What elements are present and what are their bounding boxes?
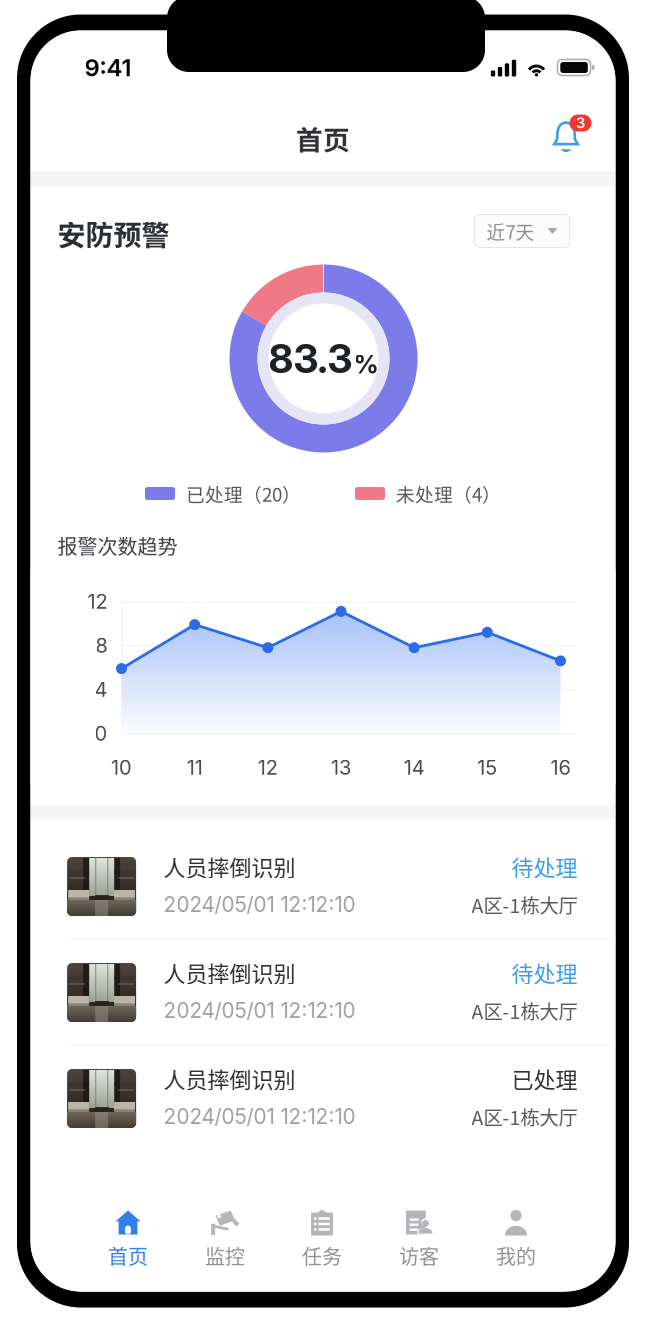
staticText: 待处理	[511, 851, 577, 882]
staticText: 已处理	[511, 1063, 577, 1094]
staticText: 4	[94, 677, 107, 702]
staticText: 3	[576, 114, 585, 132]
staticText: A区-1栋大厅	[471, 890, 577, 918]
button[interactable]: 我的	[467, 1151, 564, 1291]
staticText: 人员摔倒识别	[163, 1063, 295, 1094]
staticText: 12	[87, 589, 107, 614]
staticText: 已处理（20）	[186, 480, 301, 507]
staticText: 监控	[205, 1241, 245, 1270]
staticText: 人员摔倒识别	[163, 851, 295, 882]
staticText: 83.3	[268, 334, 352, 383]
staticText: 11	[187, 755, 203, 780]
staticText: A区-1栋大厅	[471, 996, 577, 1024]
staticText: 8	[95, 633, 107, 658]
staticText: 近7天	[486, 217, 534, 244]
button[interactable]: 人员摔倒识别	[30, 939, 615, 1045]
staticText: 0	[94, 721, 107, 746]
staticText: 2024/05/01 12:12:10	[163, 1104, 355, 1129]
staticText: 2024/05/01 12:12:10	[163, 892, 355, 917]
staticText: 报警次数趋势	[57, 531, 177, 560]
staticText: 13	[331, 755, 351, 780]
staticText: A区-1栋大厅	[471, 1102, 577, 1130]
staticText: 任务	[302, 1241, 342, 1270]
staticText: 未处理（4）	[396, 480, 501, 507]
staticText: 12	[258, 755, 278, 780]
button[interactable]: 人员摔倒识别	[30, 819, 615, 939]
button[interactable]: 访客	[370, 1151, 467, 1291]
staticText: 15	[477, 755, 497, 780]
staticText: 安防预警	[57, 213, 169, 254]
button[interactable]: 通知	[546, 115, 592, 161]
staticText: 首页	[296, 119, 350, 157]
staticText: 16	[550, 755, 570, 780]
staticText: 10	[111, 755, 132, 780]
button[interactable]: 人员摔倒识别	[30, 1045, 615, 1151]
staticText: %	[353, 349, 378, 380]
staticText: 9:41	[84, 53, 131, 82]
button[interactable]: 首页	[79, 1151, 176, 1291]
staticText: 访客	[399, 1241, 439, 1270]
staticText: 我的	[496, 1241, 536, 1270]
staticText: 14	[404, 755, 425, 780]
staticText: 首页	[108, 1241, 148, 1270]
staticText: 待处理	[511, 957, 577, 988]
button[interactable]: 任务	[273, 1151, 370, 1291]
staticText: 2024/05/01 12:12:10	[163, 998, 355, 1023]
button[interactable]: 近7天	[474, 214, 569, 247]
button[interactable]: 监控	[176, 1151, 273, 1291]
staticText: 人员摔倒识别	[163, 957, 295, 988]
